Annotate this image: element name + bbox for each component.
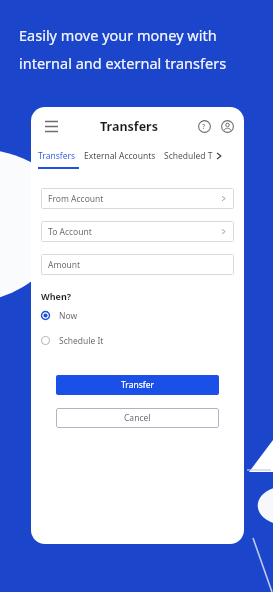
staticText: When? [41, 290, 72, 302]
button[interactable]: Scheduled T [164, 150, 213, 162]
button[interactable]: Amount [41, 254, 234, 275]
button[interactable]: From Account [41, 188, 234, 209]
staticText: internal and external transfers [19, 53, 227, 73]
staticText: Easily move your money with [19, 25, 217, 45]
staticText: From Account [48, 193, 220, 205]
button[interactable]: Transfer [56, 375, 219, 395]
button[interactable]: Menu [37, 112, 65, 140]
staticText: Transfers [100, 118, 158, 135]
staticText: Schedule It [59, 335, 104, 347]
button[interactable]: Schedule It [31, 332, 244, 349]
staticText: Amount [48, 259, 227, 271]
button[interactable]: Profile [216, 115, 238, 137]
button[interactable]: To Account [41, 221, 234, 242]
button[interactable]: Cancel [56, 408, 219, 428]
staticText: Transfer [121, 379, 154, 391]
staticText: Cancel [124, 412, 151, 424]
button[interactable]: Now [31, 307, 244, 324]
button[interactable]: Transfers [38, 150, 76, 162]
button[interactable]: Help [193, 115, 215, 137]
staticText: ? [202, 121, 206, 131]
staticText: To Account [48, 226, 220, 238]
button[interactable]: External Accounts [84, 150, 156, 162]
button[interactable]: More tabs [213, 150, 225, 162]
staticText: Now [59, 310, 78, 322]
